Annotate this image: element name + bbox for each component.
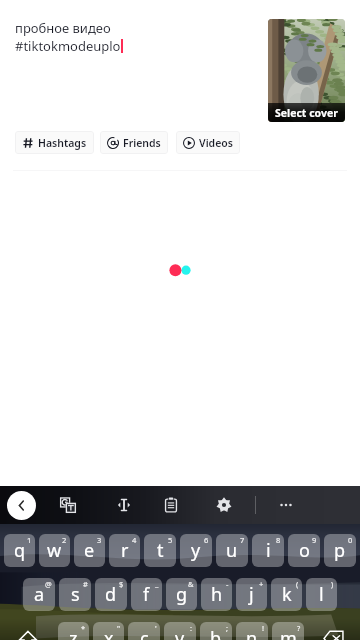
staticText: ' xyxy=(155,623,157,633)
staticText: ) xyxy=(331,579,334,589)
button[interactable]: e xyxy=(74,534,105,567)
staticText: _ xyxy=(155,579,159,589)
button[interactable]: Hashtags xyxy=(15,131,94,154)
staticText: 0 xyxy=(348,535,353,545)
staticText: 8 xyxy=(276,535,281,545)
button[interactable]: w xyxy=(39,534,70,567)
staticText: o xyxy=(299,538,310,563)
staticText: c xyxy=(140,626,149,640)
staticText: ? xyxy=(297,623,301,633)
staticText: e xyxy=(84,538,95,563)
button[interactable]: Clipboard xyxy=(159,493,183,517)
button[interactable]: z xyxy=(58,622,89,640)
staticText: y xyxy=(191,538,201,563)
button[interactable]: d xyxy=(95,578,127,611)
button[interactable]: f xyxy=(131,578,162,611)
staticText: ( xyxy=(296,579,299,589)
button[interactable]: More options xyxy=(274,493,298,517)
staticText: * xyxy=(81,623,86,633)
staticText: 2 xyxy=(62,535,67,545)
staticText: t xyxy=(157,538,164,563)
staticText: Hashtags xyxy=(38,136,87,150)
staticText: $ xyxy=(119,579,124,589)
button[interactable]: b xyxy=(200,622,232,640)
staticText: p xyxy=(334,538,346,563)
staticText: l xyxy=(319,582,324,607)
button[interactable]: v xyxy=(164,622,196,640)
button[interactable]: m xyxy=(272,622,304,640)
button[interactable]: p xyxy=(324,534,356,567)
staticText: - xyxy=(226,579,229,589)
button[interactable]: Backspace xyxy=(306,622,360,640)
staticText: 9 xyxy=(312,535,317,545)
staticText: j xyxy=(249,582,254,607)
staticText: a xyxy=(34,582,45,607)
staticText: ! xyxy=(262,623,265,633)
staticText: r xyxy=(121,538,129,563)
staticText: 3 xyxy=(97,535,102,545)
staticText: b xyxy=(210,626,222,640)
button[interactable]: q xyxy=(4,534,35,567)
staticText: u xyxy=(226,538,238,563)
button[interactable]: Back xyxy=(7,491,36,520)
staticText: 5 xyxy=(168,535,173,545)
staticText: s xyxy=(71,582,80,607)
button[interactable]: o xyxy=(288,534,320,567)
staticText: w xyxy=(47,538,62,563)
staticText: q xyxy=(14,538,26,563)
staticText: Videos xyxy=(199,136,233,150)
button[interactable]: h xyxy=(201,578,232,611)
button[interactable]: c xyxy=(128,622,160,640)
button[interactable]: Shift xyxy=(0,622,56,640)
button[interactable]: j xyxy=(236,578,267,611)
button[interactable]: Select cover xyxy=(268,19,345,122)
staticText: + xyxy=(259,579,264,589)
staticText: " xyxy=(117,623,121,633)
staticText: @ xyxy=(45,579,52,589)
staticText: d xyxy=(105,582,117,607)
button[interactable]: n xyxy=(236,622,268,640)
staticText: # xyxy=(83,579,88,589)
button[interactable]: k xyxy=(271,578,302,611)
staticText: 1 xyxy=(27,535,32,545)
staticText: m xyxy=(280,626,297,640)
button[interactable]: Move cursor xyxy=(112,493,136,517)
button[interactable]: l xyxy=(306,578,337,611)
staticText: i xyxy=(266,538,271,563)
staticText: 6 xyxy=(204,535,209,545)
staticText: #tiktokmodeuplo xyxy=(15,37,121,55)
button[interactable]: Settings xyxy=(212,493,236,517)
staticText: ; xyxy=(226,623,229,633)
staticText: 7 xyxy=(240,535,245,545)
staticText: : xyxy=(190,623,193,633)
button[interactable]: r xyxy=(109,534,140,567)
button[interactable]: Translate xyxy=(56,493,80,517)
staticText: Friends xyxy=(123,136,161,150)
staticText: k xyxy=(282,582,292,607)
button[interactable]: i xyxy=(252,534,284,567)
staticText: h xyxy=(211,582,223,607)
button[interactable]: Friends xyxy=(100,131,168,154)
button[interactable]: s xyxy=(59,578,91,611)
staticText: f xyxy=(143,582,150,607)
button[interactable]: t xyxy=(144,534,176,567)
staticText: x xyxy=(104,626,114,640)
button[interactable]: x xyxy=(93,622,124,640)
staticText: g xyxy=(176,582,188,607)
button[interactable]: Videos xyxy=(176,131,240,154)
button[interactable]: g xyxy=(166,578,197,611)
staticText: & xyxy=(188,579,194,589)
staticText: 4 xyxy=(132,535,137,545)
staticText: v xyxy=(175,626,185,640)
button[interactable]: u xyxy=(216,534,248,567)
button[interactable]: y xyxy=(180,534,212,567)
staticText: n xyxy=(246,626,258,640)
staticText: Select cover xyxy=(275,106,338,120)
staticText: z xyxy=(69,626,78,640)
button[interactable]: a xyxy=(23,578,55,611)
staticText: пробное видео xyxy=(15,19,111,37)
